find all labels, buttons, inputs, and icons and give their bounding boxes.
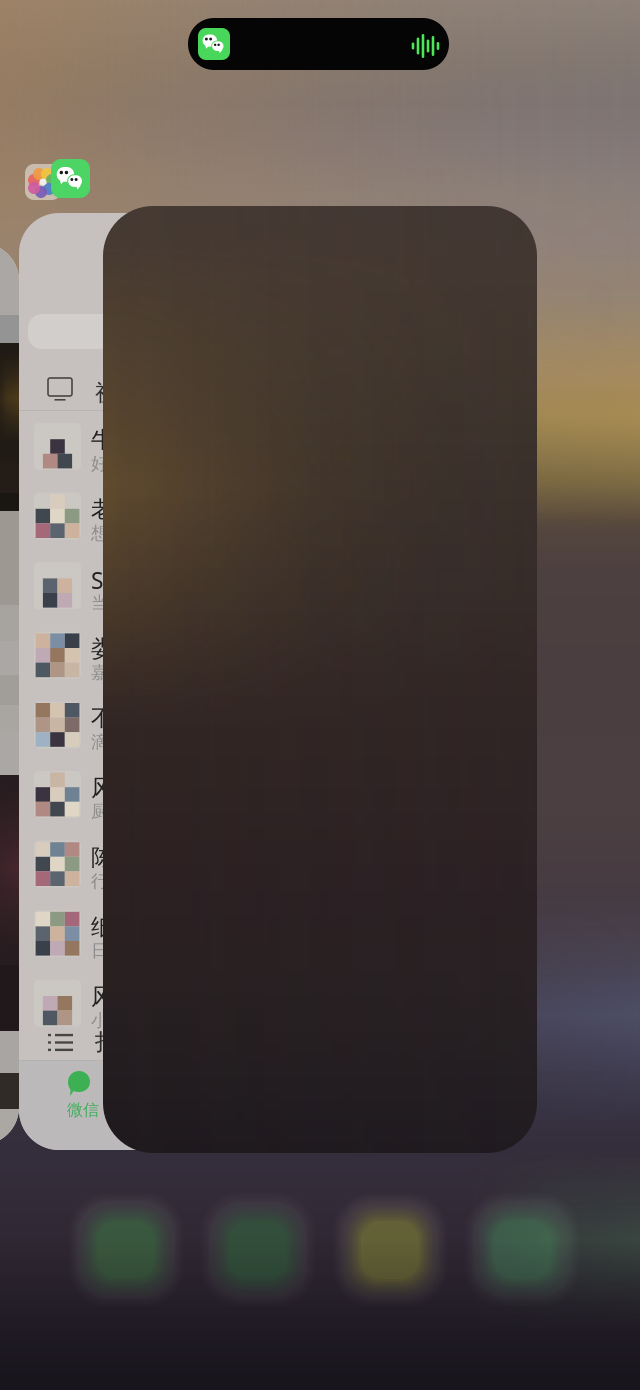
button[interactable]: 视频号 xyxy=(19,213,321,1150)
staticText: 好的收到 xyxy=(91,453,159,474)
staticText: 小麦青青 xyxy=(91,1010,159,1031)
staticText: 陈年往事 xyxy=(91,844,183,871)
staticText: 扫一扫 xyxy=(95,1028,164,1056)
button[interactable]: 牛马群 xyxy=(19,413,321,482)
staticText: 风吹麦浪 xyxy=(91,983,183,1011)
staticText: 纸短情长 xyxy=(91,913,183,941)
button[interactable]: 娄底老乡 xyxy=(19,622,321,691)
button[interactable]: 风吹麦浪 xyxy=(19,970,321,1039)
staticText: 不要打扰 xyxy=(91,704,183,732)
staticText: 牛马群 xyxy=(91,426,160,454)
staticText: 老友记 xyxy=(91,496,160,523)
button[interactable]: 老友记 xyxy=(19,483,321,552)
staticText: 厨房重地 xyxy=(91,801,159,822)
staticText: 想你了 xyxy=(91,523,142,544)
staticText: 风起云涌 xyxy=(91,774,183,802)
button[interactable]: 纸短情长 xyxy=(19,900,321,969)
staticText: 日久生情 xyxy=(91,940,159,961)
staticText: 视频号 xyxy=(95,379,164,407)
button[interactable]: 不要打扰 xyxy=(19,691,321,760)
staticText: 娄底老乡 xyxy=(91,635,183,663)
button[interactable]: Background app card xyxy=(0,243,19,1145)
staticText: 微信 xyxy=(67,1100,99,1120)
button[interactable]: 风起云涌 xyxy=(19,761,321,830)
staticText: Sky光遇 xyxy=(91,565,173,595)
staticText: 嘉禾望岗 xyxy=(91,662,159,683)
button[interactable]: 陈年往事 xyxy=(19,831,321,900)
staticText: 滴水不漏 xyxy=(91,731,159,753)
staticText: 当时只道 xyxy=(91,592,159,613)
staticText: 行路难 xyxy=(91,871,142,892)
button[interactable]: Sky光遇 xyxy=(19,552,321,621)
button[interactable]: Photos app card xyxy=(103,206,537,1153)
